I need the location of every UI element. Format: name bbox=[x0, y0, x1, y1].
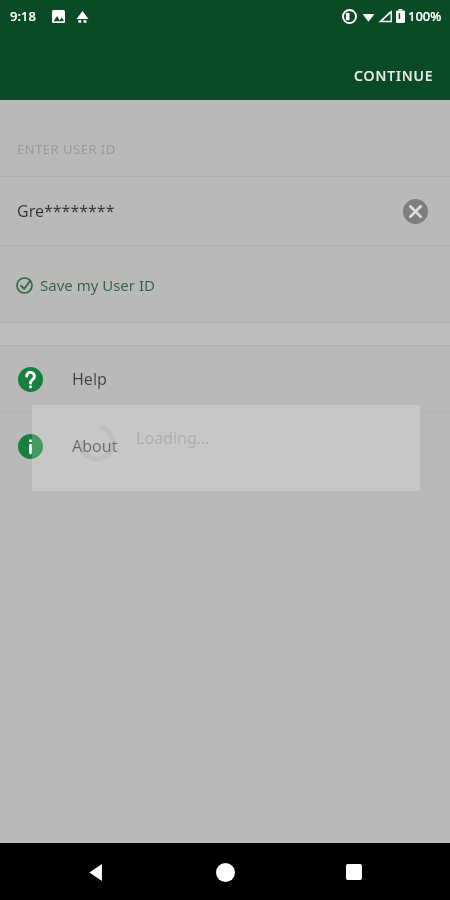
button[interactable]: Gre******** bbox=[0, 177, 450, 245]
button[interactable]: Clear bbox=[398, 194, 432, 228]
staticText: ENTER USER ID bbox=[17, 140, 116, 158]
button[interactable]: Recent apps bbox=[330, 848, 378, 896]
staticText: Help bbox=[72, 368, 107, 390]
staticText: Gre******** bbox=[17, 200, 115, 222]
button[interactable]: CONTINUE bbox=[338, 54, 450, 97]
button[interactable]: About bbox=[0, 413, 450, 479]
button[interactable]: Back bbox=[72, 848, 120, 896]
staticText: 9:18 bbox=[10, 7, 36, 25]
button[interactable]: Help bbox=[0, 346, 450, 412]
staticText: Save my User ID bbox=[40, 275, 155, 295]
staticText: Loading... bbox=[136, 427, 210, 449]
button[interactable]: Home bbox=[201, 848, 249, 896]
button[interactable]: Save my User ID bbox=[0, 260, 450, 310]
staticText: About bbox=[72, 435, 118, 457]
staticText: 100% bbox=[408, 7, 442, 25]
staticText: CONTINUE bbox=[354, 66, 434, 85]
